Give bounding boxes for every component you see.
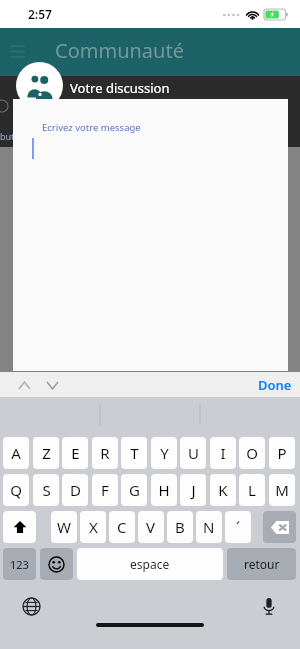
button[interactable]: A	[3, 437, 29, 469]
staticText: F	[101, 480, 109, 500]
staticText: T	[130, 443, 139, 463]
staticText: I	[220, 443, 226, 463]
button[interactable]: Dictation	[256, 593, 282, 619]
button[interactable]: N	[196, 511, 222, 543]
staticText: 123	[10, 557, 29, 572]
staticText: O	[246, 443, 258, 463]
staticText: E	[71, 443, 80, 463]
staticText: V	[146, 517, 156, 537]
staticText: espace	[130, 556, 170, 572]
staticText: Q	[10, 480, 22, 500]
button[interactable]: 123	[3, 548, 36, 580]
button[interactable]: U	[180, 437, 206, 469]
button[interactable]: W	[51, 511, 77, 543]
button[interactable]: M	[269, 474, 295, 506]
staticText: S	[42, 480, 51, 500]
button[interactable]: retour	[227, 548, 296, 580]
button[interactable]: I	[210, 437, 236, 469]
staticText: retour	[244, 556, 280, 572]
staticText: N	[203, 517, 215, 537]
button[interactable]: K	[210, 474, 236, 506]
button[interactable]: Next field	[40, 373, 64, 397]
staticText: M	[275, 480, 289, 500]
staticText: P	[277, 443, 287, 463]
button[interactable]: Q	[3, 474, 29, 506]
staticText: Votre discussion	[70, 79, 170, 97]
button[interactable]: Menu	[2, 37, 32, 67]
staticText: Y	[160, 443, 169, 463]
button[interactable]: R	[92, 437, 118, 469]
button[interactable]: O	[239, 437, 265, 469]
button[interactable]: Ecrivez votre message	[13, 99, 288, 371]
button[interactable]: Y	[151, 437, 177, 469]
staticText: Ecrivez votre message	[42, 121, 141, 134]
staticText: C	[117, 517, 127, 537]
staticText: D	[70, 480, 81, 500]
staticText: Done	[258, 376, 292, 394]
button[interactable]: Previous field	[12, 373, 36, 397]
staticText: K	[218, 480, 228, 500]
button[interactable]: L	[239, 474, 265, 506]
button[interactable]: Group	[16, 62, 63, 109]
staticText: but	[0, 130, 15, 142]
staticText: 2:57	[28, 6, 52, 22]
staticText: H	[158, 480, 170, 500]
staticText: B	[175, 517, 185, 537]
button[interactable]: P	[269, 437, 295, 469]
button[interactable]: E	[62, 437, 88, 469]
button[interactable]: B	[167, 511, 193, 543]
staticText: A	[11, 443, 21, 463]
staticText: X	[89, 517, 98, 537]
button[interactable]: G	[121, 474, 147, 506]
button[interactable]: Change keyboard	[18, 593, 44, 619]
button[interactable]: D	[62, 474, 88, 506]
staticText: W	[57, 517, 71, 537]
button[interactable]: F	[92, 474, 118, 506]
staticText: Z	[42, 443, 51, 463]
button[interactable]: T	[121, 437, 147, 469]
staticText: L	[248, 480, 256, 500]
button[interactable]: Shift	[3, 511, 36, 543]
button[interactable]: espace	[77, 548, 223, 580]
staticText: Communauté	[55, 37, 184, 64]
staticText: G	[129, 480, 140, 500]
staticText: ´	[236, 517, 241, 537]
button[interactable]: X	[80, 511, 106, 543]
button[interactable]: Backspace	[263, 511, 296, 543]
button[interactable]: C	[109, 511, 135, 543]
button[interactable]: S	[33, 474, 59, 506]
button[interactable]: Done	[258, 376, 292, 394]
staticText: U	[188, 443, 199, 463]
staticText: R	[100, 443, 110, 463]
staticText: J	[191, 480, 196, 500]
button[interactable]: J	[180, 474, 206, 506]
button[interactable]: Emoji	[40, 548, 73, 580]
button[interactable]: H	[151, 474, 177, 506]
button[interactable]: ´	[225, 511, 251, 543]
button[interactable]: Z	[33, 437, 59, 469]
button[interactable]: V	[138, 511, 164, 543]
